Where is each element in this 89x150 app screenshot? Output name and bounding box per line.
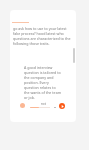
button[interactable]: Next [59,103,65,109]
staticText: go ask how to use to your latest fake pr… [13,26,71,46]
button[interactable]: Favorite [20,103,25,108]
staticText: nxt [41,102,46,106]
button[interactable]: nxt [41,102,46,106]
staticText: A good interview question is tailored to… [24,65,62,100]
